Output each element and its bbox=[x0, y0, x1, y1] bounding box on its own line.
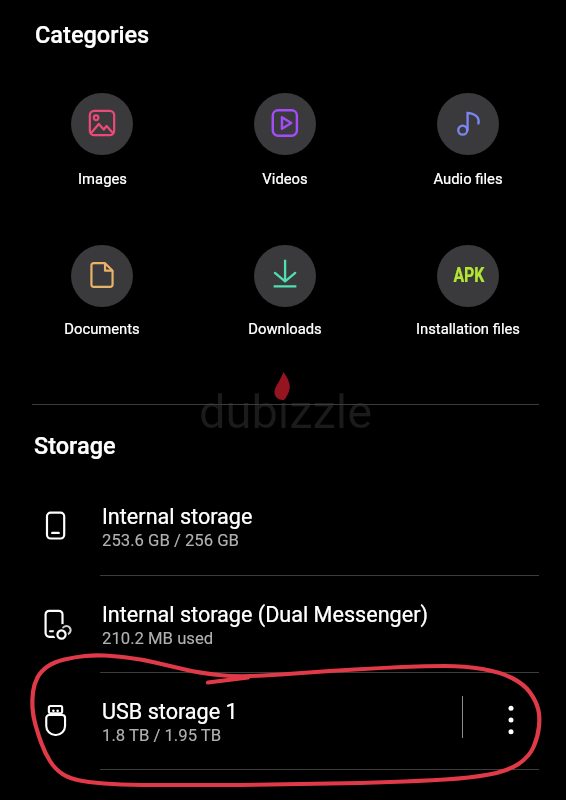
staticText: 1.8 TB / 1.95 TB bbox=[102, 726, 222, 746]
button[interactable]: Videos bbox=[194, 93, 376, 187]
staticText: dubizzle bbox=[199, 384, 373, 439]
staticText: Internal storage bbox=[102, 504, 253, 529]
button[interactable]: More options bbox=[487, 697, 535, 745]
button[interactable]: Images bbox=[11, 93, 193, 187]
button[interactable]: Audio files bbox=[377, 93, 559, 187]
staticText: Internal storage (Dual Messenger) bbox=[102, 602, 428, 627]
staticText: Storage bbox=[34, 432, 116, 460]
staticText: APK bbox=[453, 263, 485, 287]
staticText: Downloads bbox=[248, 320, 322, 337]
staticText: Documents bbox=[64, 320, 140, 337]
staticText: USB storage 1 bbox=[102, 699, 238, 724]
staticText: Categories bbox=[35, 21, 150, 49]
button[interactable]: Documents bbox=[11, 245, 193, 337]
staticText: Images bbox=[78, 170, 127, 187]
button[interactable]: USB storage 1 bbox=[0, 673, 566, 800]
staticText: 253.6 GB / 256 GB bbox=[102, 531, 240, 551]
button[interactable]: Internal storage (Dual Messenger) bbox=[0, 576, 566, 800]
button[interactable]: APK bbox=[377, 245, 559, 337]
button[interactable]: Internal storage bbox=[0, 478, 566, 800]
staticText: Audio files bbox=[433, 170, 503, 187]
button[interactable]: Downloads bbox=[194, 245, 376, 337]
staticText: Videos bbox=[262, 170, 308, 187]
staticText: Installation files bbox=[416, 320, 520, 337]
staticText: 210.2 MB used bbox=[102, 629, 214, 649]
